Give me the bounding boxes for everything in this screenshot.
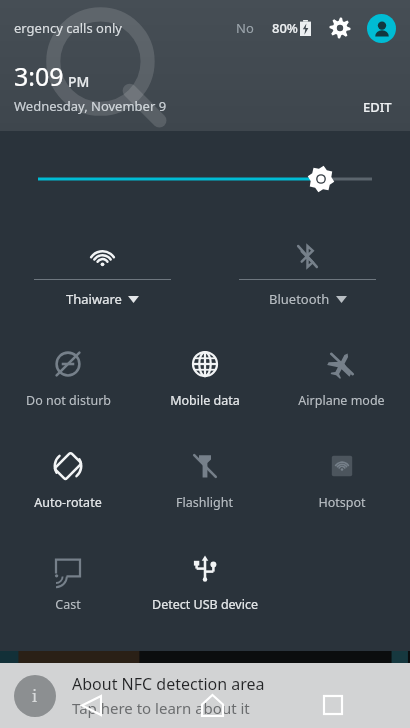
- button[interactable]: Recents: [311, 683, 355, 727]
- button[interactable]: Home: [190, 683, 234, 727]
- button[interactable]: Brightness: [0, 131, 410, 226]
- staticText: Do not disturb: [26, 392, 111, 409]
- staticText: Detect USB device: [152, 596, 258, 613]
- staticText: 3:09: [14, 59, 64, 93]
- button[interactable]: EDIT: [355, 93, 400, 121]
- button[interactable]: User profile: [367, 14, 396, 43]
- button[interactable]: Airplane mode: [273, 342, 410, 420]
- staticText: EDIT: [363, 98, 392, 116]
- button[interactable]: Hotspot: [273, 444, 410, 522]
- staticText: Tap here to learn about it: [72, 698, 250, 718]
- button[interactable]: Thaiware: [0, 234, 205, 320]
- button[interactable]: Bluetooth: [205, 234, 410, 320]
- button[interactable]: Cast: [0, 546, 136, 624]
- staticText: 80%: [272, 19, 298, 37]
- button[interactable]: Mobile data: [136, 342, 273, 420]
- staticText: Flashlight: [176, 494, 233, 511]
- button[interactable]: Settings: [325, 13, 355, 43]
- button[interactable]: Do not disturb: [0, 342, 136, 420]
- staticText: PM: [68, 72, 90, 91]
- staticText: About NFC detection area: [72, 673, 265, 695]
- staticText: Wednesday, November 9: [14, 97, 167, 115]
- staticText: ergency calls only: [14, 19, 122, 37]
- staticText: Airplane mode: [298, 392, 385, 409]
- button[interactable]: Flashlight: [136, 444, 273, 522]
- staticText: Bluetooth: [269, 290, 330, 308]
- staticText: No: [236, 19, 254, 37]
- button[interactable]: Detect USB device: [136, 546, 273, 624]
- staticText: Hotspot: [318, 494, 366, 511]
- staticText: Mobile data: [170, 392, 240, 409]
- staticText: Cast: [55, 596, 81, 613]
- staticText: Thaiware: [66, 290, 122, 308]
- button[interactable]: Back: [69, 683, 113, 727]
- staticText: i: [32, 685, 38, 707]
- button[interactable]: Auto-rotate: [0, 444, 136, 522]
- staticText: Auto-rotate: [34, 494, 102, 511]
- button[interactable]: i: [0, 663, 410, 728]
